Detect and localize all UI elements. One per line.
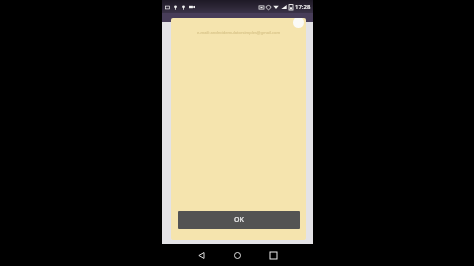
button[interactable]: Recent apps	[255, 244, 291, 266]
staticText: OK	[234, 215, 244, 225]
staticText: 17:28	[295, 3, 311, 11]
staticText: e-mail: androidemulatorsimples@gmail.com	[171, 30, 306, 35]
button[interactable]: Home	[219, 244, 255, 266]
button[interactable]: Back	[184, 244, 219, 266]
button[interactable]: OK	[178, 211, 300, 229]
